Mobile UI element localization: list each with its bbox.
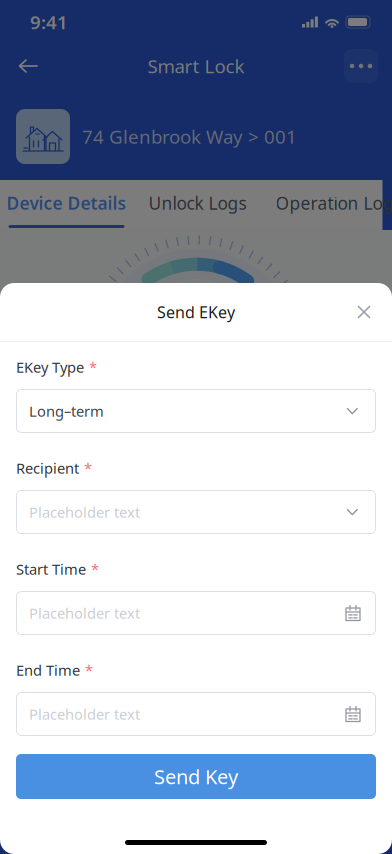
button[interactable]: Placeholder text [16, 490, 376, 534]
button[interactable]: Long–term [16, 389, 376, 433]
staticText: Placeholder text [29, 502, 140, 522]
staticText: 74 Glenbrook Way > 001 [82, 124, 297, 149]
staticText: * [91, 559, 99, 579]
button[interactable]: Placeholder text [16, 692, 376, 736]
button[interactable]: Device Details [0, 180, 126, 228]
button[interactable]: Placeholder text [16, 591, 376, 635]
staticText: Placeholder text [29, 603, 140, 623]
staticText: Start Time [16, 559, 86, 579]
button[interactable]: Close [346, 294, 382, 330]
staticText: EKey Type [16, 357, 84, 377]
staticText: Device Details [6, 191, 126, 214]
staticText: * [84, 458, 92, 478]
button[interactable]: Operation Logs [0, 180, 392, 228]
button[interactable]: Send Key [16, 754, 376, 799]
staticText: Unlock Logs [148, 191, 246, 214]
staticText: Operation Logs [275, 191, 392, 214]
staticText: End Time [16, 660, 80, 680]
staticText: Send Key [154, 763, 238, 790]
staticText: * [89, 357, 97, 377]
staticText: Smart Lock [147, 54, 244, 78]
button[interactable]: Back [8, 46, 48, 86]
staticText: Placeholder text [29, 704, 140, 724]
button[interactable]: More options [344, 49, 378, 83]
staticText: 9:41 [30, 10, 68, 34]
staticText: Long–term [29, 401, 104, 421]
button[interactable]: Unlock Logs [0, 180, 252, 228]
staticText: Send EKey [157, 301, 235, 323]
staticText: * [85, 660, 93, 680]
staticText: Recipient [16, 458, 79, 478]
